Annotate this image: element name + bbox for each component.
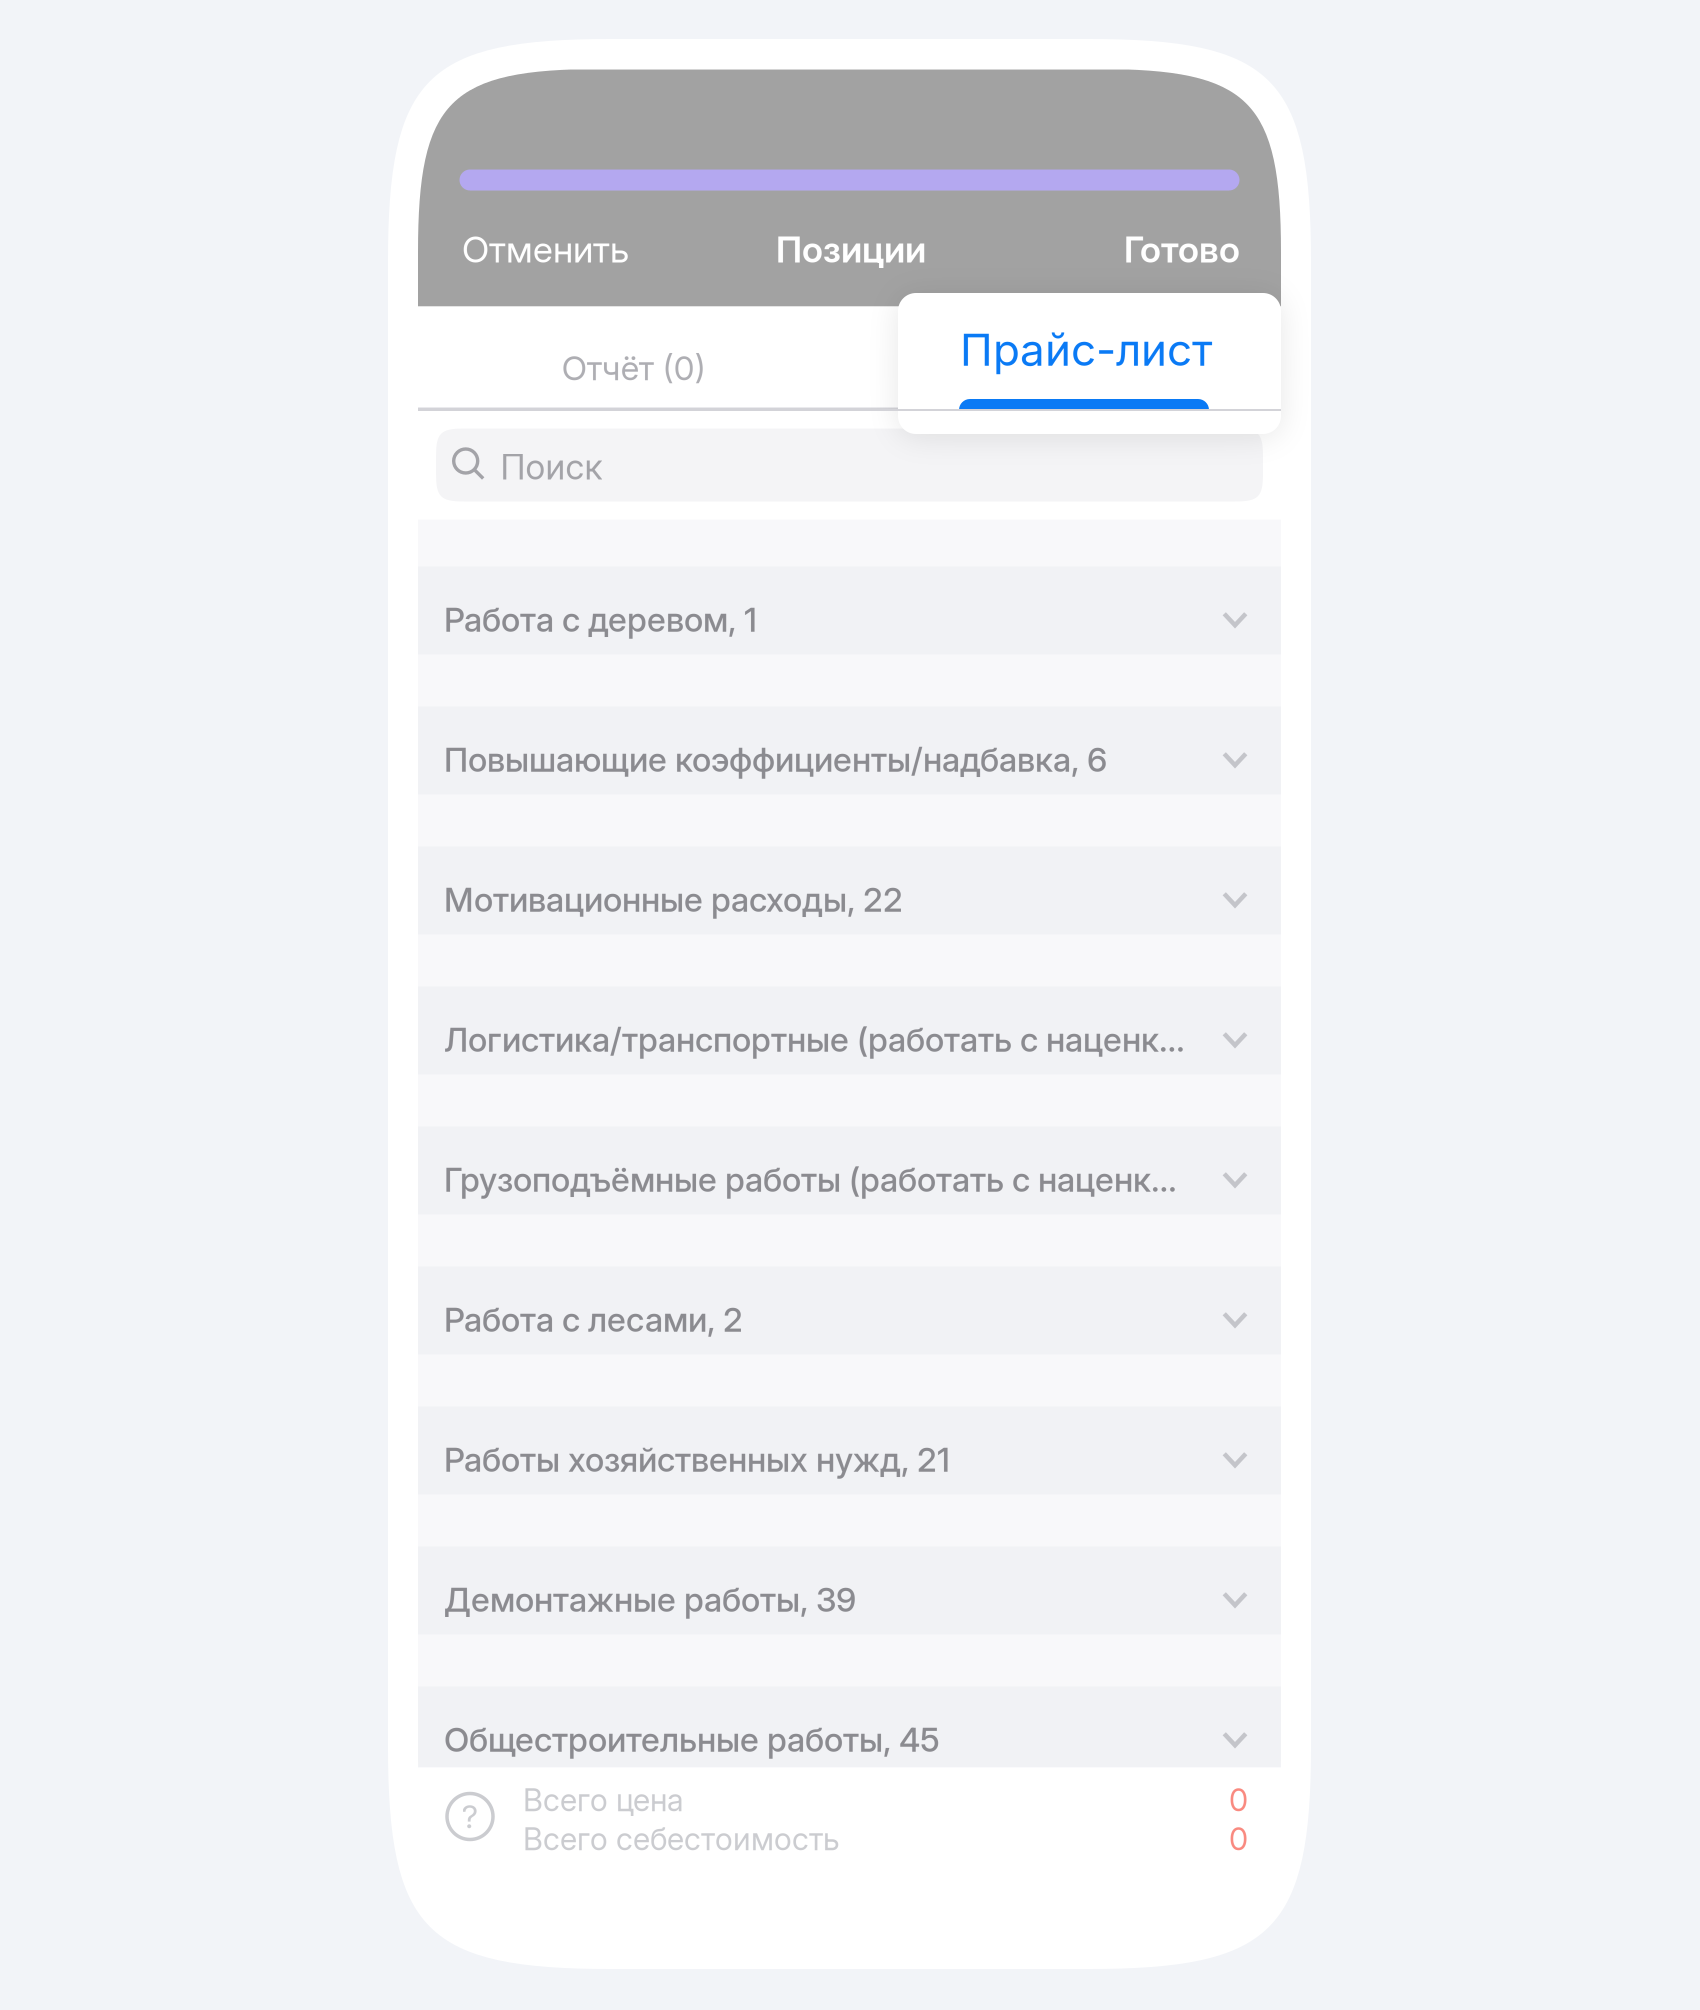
staticText: Готово [1124, 228, 1240, 271]
button[interactable]: Прайс-лист [898, 293, 1281, 434]
button[interactable]: Демонтажные работы, 39 [418, 1546, 1281, 1634]
staticText: Демонтажные работы, 39 [444, 1579, 856, 1620]
button[interactable]: Повышающие коэффициенты/надбавка, 6 [418, 706, 1281, 794]
staticText: 0 [1229, 1781, 1248, 1819]
staticText: 0 [1229, 1821, 1248, 1858]
staticText: Работа с деревом, 1 [444, 599, 757, 640]
staticText: Прайс-лист [973, 348, 1158, 388]
button[interactable]: Готово [1124, 228, 1240, 271]
staticText: Поиск [500, 446, 602, 488]
staticText: Отменить [462, 228, 629, 271]
button[interactable]: Общестроительные работы, 45 [418, 1686, 1281, 1767]
staticText: Мотивационные расходы, 22 [444, 879, 903, 920]
staticText: ? [461, 1797, 478, 1836]
button[interactable]: Отменить [462, 228, 629, 271]
button[interactable]: Прайс-лист [849, 306, 1281, 409]
staticText: Грузоподъёмные работы (работать с наценк… [444, 1159, 1177, 1200]
staticText: Отчёт (0) [562, 348, 706, 388]
button[interactable]: Логистика/транспортные (работать с нацен… [418, 986, 1281, 1074]
staticText: Общестроительные работы, 45 [444, 1719, 940, 1760]
button[interactable]: Грузоподъёмные работы (работать с наценк… [418, 1126, 1281, 1214]
staticText: Работа с лесами, 2 [444, 1299, 743, 1340]
button[interactable]: Мотивационные расходы, 22 [418, 846, 1281, 934]
staticText: Повышающие коэффициенты/надбавка, 6 [444, 739, 1107, 780]
staticText: Позиции [776, 228, 926, 271]
button[interactable]: Отчёт (0) [418, 306, 849, 409]
staticText: Всего цена [523, 1781, 684, 1819]
staticText: Логистика/транспортные (работать с нацен… [444, 1019, 1185, 1060]
button[interactable]: Работа с лесами, 2 [418, 1266, 1281, 1354]
button[interactable]: Работа с деревом, 1 [418, 566, 1281, 654]
staticText: Всего себестоимость [523, 1821, 840, 1858]
staticText: Работы хозяйственных нужд, 21 [444, 1439, 950, 1480]
button[interactable]: Работы хозяйственных нужд, 21 [418, 1406, 1281, 1494]
staticText: Прайс-лист [960, 323, 1212, 376]
